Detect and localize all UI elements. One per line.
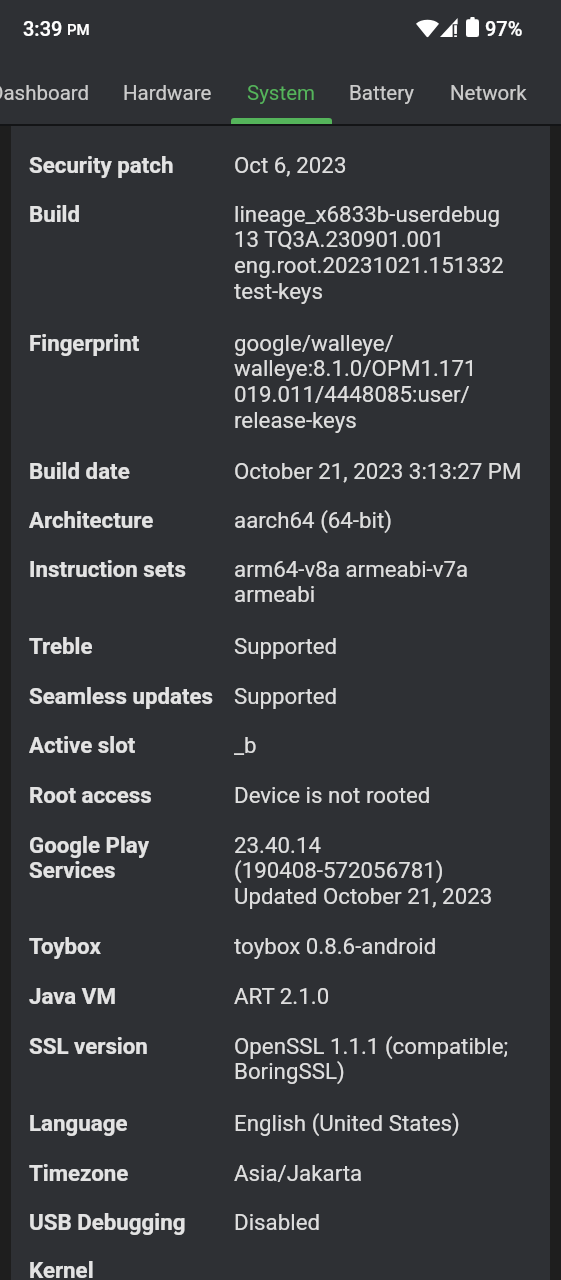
staticText: Device is not rooted xyxy=(234,782,431,808)
staticText: _b xyxy=(234,732,257,758)
staticText: Build xyxy=(29,201,234,227)
other: Battery 97 percent xyxy=(466,17,479,37)
staticText: aarch64 (64-bit) xyxy=(234,507,393,533)
button[interactable]: Battery xyxy=(331,62,433,124)
staticText: Active slot xyxy=(29,732,234,758)
staticText: Toybox xyxy=(29,933,234,959)
staticText: Hardware xyxy=(123,81,212,105)
staticText: google/walleye/ walleye:8.1.0/OPM1.171 0… xyxy=(234,330,477,434)
button[interactable]: Fingerprint xyxy=(11,318,550,446)
staticText: Google Play Services xyxy=(29,832,234,884)
staticText: Build date xyxy=(29,458,234,484)
staticText: English (United States) xyxy=(234,1110,460,1136)
staticText: Battery xyxy=(349,81,415,105)
staticText: toybox 0.8.6-android xyxy=(234,933,437,959)
staticText: Seamless updates xyxy=(29,683,234,709)
button[interactable]: Google Play Services xyxy=(11,820,550,921)
staticText: 23.40.14 (190408-572056781) Updated Octo… xyxy=(234,832,493,910)
staticText: Security patch xyxy=(29,152,234,178)
button[interactable]: Hardware xyxy=(105,62,229,124)
staticText: ART 2.1.0 xyxy=(234,983,330,1009)
button[interactable]: Language xyxy=(11,1098,550,1148)
staticText: Timezone xyxy=(29,1160,234,1186)
staticText: Oct 6, 2023 xyxy=(234,152,347,178)
staticText: arm64-v8a armeabi-v7a armeabi xyxy=(234,556,536,608)
staticText: Network xyxy=(450,81,527,105)
staticText: USB Debugging xyxy=(29,1209,234,1235)
staticText: 3:39 xyxy=(23,17,63,40)
button[interactable]: Security patch xyxy=(11,140,550,189)
button[interactable]: Kernel xyxy=(11,1245,550,1280)
staticText: Kernel xyxy=(29,1257,234,1280)
staticText: Supported xyxy=(234,683,338,709)
button[interactable]: Dashboard xyxy=(0,62,105,124)
button[interactable]: Java VM xyxy=(11,971,550,1021)
staticText: SSL version xyxy=(29,1033,234,1059)
staticText: October 21, 2023 3:13:27 PM xyxy=(234,458,522,484)
button[interactable]: Build date xyxy=(11,446,550,495)
button[interactable]: Build xyxy=(11,189,550,318)
button[interactable]: SSL version xyxy=(11,1021,550,1098)
button[interactable]: Instruction sets xyxy=(11,544,550,621)
staticText: Architecture xyxy=(29,507,234,533)
button[interactable]: Network xyxy=(431,62,546,124)
staticText: Dashboard xyxy=(0,81,90,105)
staticText: OpenSSL 1.1.1 (compatible; BoringSSL) xyxy=(234,1033,536,1085)
staticText: Fingerprint xyxy=(29,330,234,356)
button[interactable]: Active slot xyxy=(11,720,550,770)
button[interactable]: Timezone xyxy=(11,1148,550,1197)
staticText: 97% xyxy=(485,17,523,40)
staticText: System xyxy=(247,81,316,105)
staticText: Root access xyxy=(29,782,234,808)
staticText: lineage_x6833b-userdebug 13 TQ3A.230901.… xyxy=(234,201,504,305)
staticText: Java VM xyxy=(29,983,234,1009)
button[interactable]: Architecture xyxy=(11,495,550,544)
staticText: Disabled xyxy=(234,1209,321,1235)
button[interactable]: Seamless updates xyxy=(11,671,550,720)
button[interactable]: System xyxy=(232,62,331,124)
staticText: Supported xyxy=(234,633,338,659)
other: Wi-Fi signal xyxy=(416,19,439,37)
other: Mobile signal, no internet xyxy=(440,18,458,37)
staticText: Instruction sets xyxy=(29,556,234,582)
staticText: Language xyxy=(29,1110,234,1136)
button[interactable]: Root access xyxy=(11,770,550,820)
staticText: Treble xyxy=(29,633,234,659)
button[interactable]: Treble xyxy=(11,621,550,671)
button[interactable]: Toybox xyxy=(11,921,550,971)
button[interactable]: USB Debugging xyxy=(11,1197,550,1245)
staticText: PM xyxy=(67,21,90,39)
staticText: Asia/Jakarta xyxy=(234,1160,363,1186)
